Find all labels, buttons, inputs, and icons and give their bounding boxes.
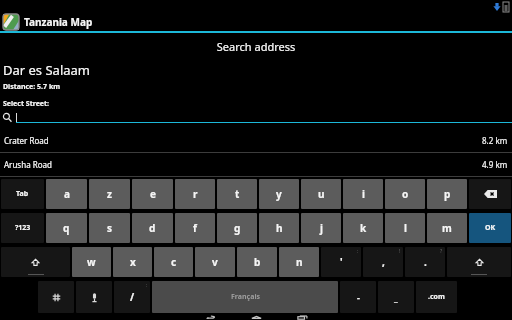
button[interactable]: ' [321,247,361,277]
button[interactable]: k [343,213,383,243]
staticText: w [87,255,96,269]
button[interactable]: Recents [290,315,314,320]
staticText: m [442,221,452,235]
button[interactable]: m [427,213,467,243]
button[interactable]: . [405,247,445,277]
button[interactable]: , [363,247,403,277]
button[interactable]: OK [469,213,511,243]
staticText: .com [428,292,445,302]
staticText: t [235,187,240,201]
button[interactable]: n [279,247,319,277]
button[interactable]: l [385,213,425,243]
staticText: i [362,187,365,201]
staticText: p [444,187,451,201]
button[interactable]: g [217,213,257,243]
staticText: Français [231,292,260,302]
staticText: a [64,187,70,201]
button[interactable]: z [89,179,130,209]
staticText: c [171,255,177,269]
staticText: e [150,187,156,201]
button[interactable]: .com [416,281,457,313]
button[interactable]: u [301,179,341,209]
staticText: o [402,187,409,201]
staticText: z [107,187,112,201]
button[interactable]: r [175,179,215,209]
button[interactable]: i [343,179,383,209]
staticText: - [357,291,360,303]
staticText: ' [340,255,343,269]
button[interactable]: y [259,179,299,209]
button[interactable]: Voice input [76,281,112,313]
staticText: s [107,221,113,235]
staticText: b [254,255,261,269]
button[interactable]: w [72,247,111,277]
button[interactable]: Backspace [469,179,511,209]
staticText: 8.2 km [482,135,508,146]
button[interactable]: b [237,247,277,277]
staticText: : [146,282,148,289]
button[interactable]: e [132,179,173,209]
button[interactable]: Home [244,315,268,320]
button[interactable]: s [89,213,130,243]
staticText: / [130,290,135,304]
staticText: , [382,255,385,269]
button[interactable]: v [195,247,235,277]
staticText: g [234,221,241,235]
other: Search [2,112,13,123]
staticText: ?123 [15,223,31,233]
staticText: Tanzania Map [24,15,93,29]
button[interactable]: j [301,213,341,243]
staticText: n [296,255,303,269]
staticText: 4.9 km [482,159,508,170]
button[interactable]: x [113,247,152,277]
staticText: Distance: 5.7 km [3,82,61,92]
staticText: : [357,248,359,255]
button[interactable]: t [217,179,257,209]
button[interactable]: Arusha Road [0,153,512,176]
staticText: Tab [16,189,29,199]
button[interactable]: ?123 [1,213,44,243]
staticText: k [360,221,367,235]
button[interactable]: Shift [447,247,511,277]
button[interactable]: a [46,179,87,209]
button[interactable]: c [154,247,193,277]
staticText: _ [394,291,398,303]
button[interactable]: f [175,213,215,243]
button[interactable]: Français [152,281,338,313]
staticText: Search address [0,39,512,54]
button[interactable]: Change keyboard [38,281,74,313]
staticText: OK [485,223,496,233]
staticText: y [276,187,282,201]
staticText: u [318,187,325,201]
staticText: v [212,255,218,269]
button[interactable]: q [46,213,87,243]
staticText: f [193,221,197,235]
button[interactable]: Crater Road [0,129,512,152]
staticText: h [276,221,283,235]
button[interactable]: _ [378,281,414,313]
button[interactable]: o [385,179,425,209]
button[interactable]: - [340,281,376,313]
staticText: ! [399,248,401,255]
staticText: Crater Road [4,135,49,146]
staticText: ? [440,248,443,255]
staticText: Select Street: [3,99,50,109]
button[interactable]: p [427,179,467,209]
button[interactable]: Shift [1,247,70,277]
staticText: . [424,255,427,269]
button[interactable]: Back [198,315,222,320]
button[interactable]: / [114,281,150,313]
staticText: x [130,255,136,269]
button[interactable]: d [132,213,173,243]
button[interactable]: Tab [1,179,44,209]
staticText: d [149,221,156,235]
staticText: Arusha Road [4,159,52,170]
staticText: q [63,221,70,235]
staticText: l [404,221,407,235]
staticText: Dar es Salaam [3,61,90,79]
button[interactable]: h [259,213,299,243]
staticText: j [320,221,323,235]
button[interactable]: Search [0,109,512,123]
staticText: r [193,187,198,201]
